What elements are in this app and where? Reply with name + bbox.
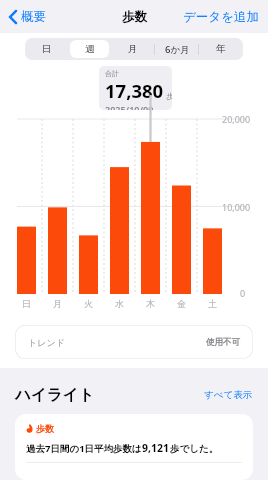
staticText: 17,380 bbox=[105, 78, 164, 103]
staticText: 20,000 bbox=[222, 113, 251, 125]
button[interactable]: Steps bbox=[15, 414, 253, 480]
button[interactable]: 日 bbox=[27, 40, 66, 58]
other: Steps bbox=[26, 424, 33, 433]
staticText: 2025/10/09 bbox=[105, 103, 154, 110]
staticText: 日 bbox=[42, 43, 52, 55]
staticText: 10,000 bbox=[222, 201, 251, 213]
staticText: 歩 bbox=[166, 91, 172, 101]
staticText: 日 bbox=[22, 298, 31, 309]
staticText: 歩数 bbox=[122, 9, 147, 25]
button[interactable]: すべて表示 bbox=[204, 385, 253, 405]
staticText: 週 bbox=[85, 43, 95, 55]
staticText: 水 bbox=[115, 298, 124, 309]
staticText: すべて表示 bbox=[204, 389, 253, 401]
staticText: 木 bbox=[146, 298, 155, 309]
staticText: 土 bbox=[208, 298, 217, 309]
staticText: 過去7日間の1日平均歩数は bbox=[26, 442, 142, 455]
staticText: 6か月 bbox=[165, 43, 190, 56]
staticText: 月 bbox=[53, 298, 62, 309]
staticText: 0 bbox=[240, 287, 246, 299]
staticText: 歩数 bbox=[36, 423, 54, 434]
staticText: データを追加 bbox=[183, 9, 259, 25]
staticText: 使用不可 bbox=[206, 337, 240, 348]
staticText: 年 bbox=[216, 43, 226, 55]
staticText: 概要 bbox=[21, 9, 46, 25]
button[interactable]: 週 bbox=[70, 40, 109, 58]
staticText: ハイライト bbox=[15, 385, 95, 405]
staticText: トレンド bbox=[28, 337, 65, 348]
button[interactable]: 月 bbox=[113, 40, 153, 58]
staticText: 月 bbox=[128, 43, 138, 55]
staticText: 火 bbox=[84, 298, 93, 309]
button[interactable]: データを追加 bbox=[174, 4, 268, 30]
staticText: 合計 bbox=[105, 69, 119, 78]
button[interactable]: 概要 bbox=[0, 4, 56, 30]
button[interactable]: 年 bbox=[201, 40, 241, 58]
staticText: 9,121 bbox=[142, 441, 170, 455]
staticText: 歩でした。 bbox=[170, 443, 219, 455]
staticText: 金 bbox=[177, 298, 186, 309]
button[interactable]: 6か月 bbox=[157, 40, 197, 58]
button[interactable]: トレンド bbox=[15, 325, 253, 359]
